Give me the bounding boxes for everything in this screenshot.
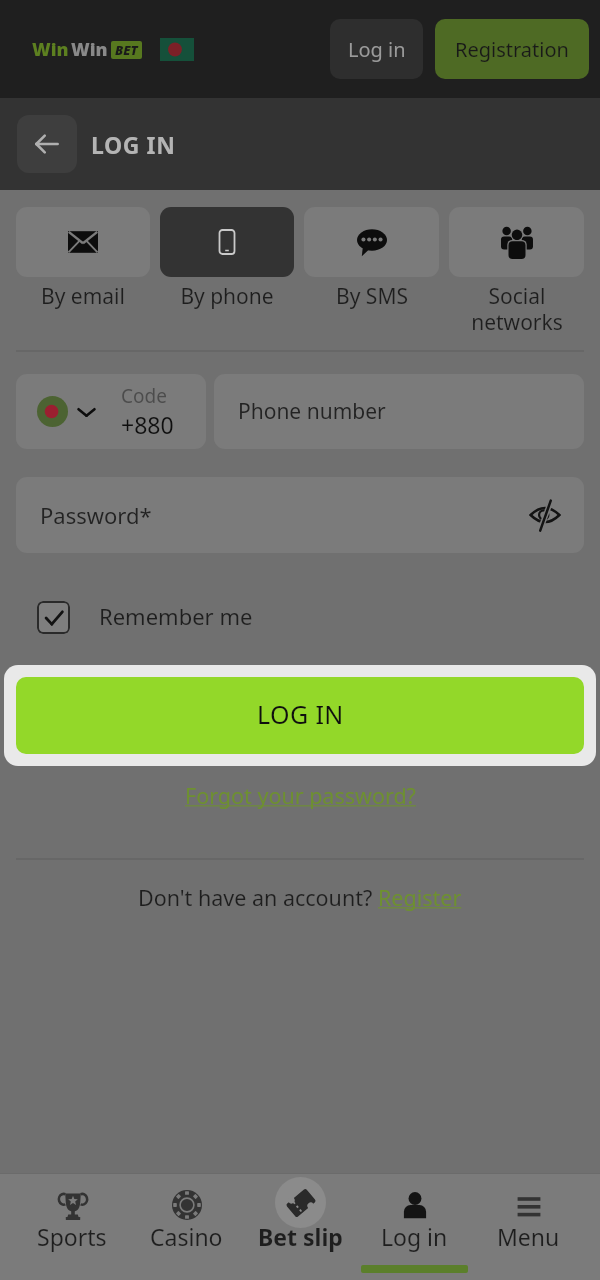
button[interactable]: Log in	[357, 1174, 471, 1277]
other: Select country code	[77, 402, 96, 421]
staticText: Remember me	[99, 601, 253, 631]
button[interactable]: Back	[17, 115, 77, 173]
staticText: By phone	[180, 282, 274, 311]
button[interactable]: By phone	[160, 207, 294, 311]
button[interactable]: By email	[16, 207, 150, 311]
staticText: Casino	[150, 1221, 223, 1252]
staticText: Win	[32, 37, 69, 62]
button[interactable]: Registration	[435, 19, 589, 79]
button[interactable]: Bet slip	[243, 1174, 357, 1256]
button[interactable]: Phone number	[214, 374, 584, 449]
staticText: LOG IN	[91, 129, 176, 160]
staticText: Password*	[40, 500, 152, 530]
staticText: Menu	[497, 1221, 560, 1252]
button[interactable]: Log in	[330, 19, 423, 79]
button[interactable]: Menu	[471, 1174, 585, 1256]
staticText: Code	[121, 383, 167, 409]
button[interactable]: Sports	[15, 1174, 129, 1256]
button[interactable]: Social networks	[449, 207, 584, 337]
staticText: Social networks	[471, 282, 563, 337]
button[interactable]: Password*	[16, 477, 584, 553]
staticText: By email	[41, 282, 125, 311]
staticText: Win	[71, 37, 108, 62]
staticText: Sports	[37, 1221, 107, 1252]
button[interactable]: By SMS	[304, 207, 439, 311]
button[interactable]: WinWin Bet home	[32, 37, 194, 62]
staticText: By SMS	[336, 282, 408, 311]
button[interactable]: LOG IN	[16, 677, 584, 754]
button[interactable]: Casino	[129, 1174, 243, 1256]
staticText: Bet slip	[258, 1221, 343, 1252]
staticText: LOG IN	[257, 697, 344, 731]
button[interactable]: Forgot your password?	[185, 781, 416, 810]
button[interactable]: Remember me	[37, 601, 253, 634]
button[interactable]: Select country code	[16, 374, 206, 449]
staticText: Phone number	[238, 397, 386, 426]
staticText: +880	[121, 409, 174, 440]
button[interactable]: Register	[378, 883, 462, 912]
staticText: BET	[115, 41, 138, 59]
staticText: Log in	[381, 1221, 448, 1252]
button[interactable]: Show password	[526, 496, 564, 534]
staticText: Don't have an account?	[138, 883, 378, 912]
staticText: Log in	[348, 36, 406, 63]
staticText: Registration	[455, 36, 569, 63]
